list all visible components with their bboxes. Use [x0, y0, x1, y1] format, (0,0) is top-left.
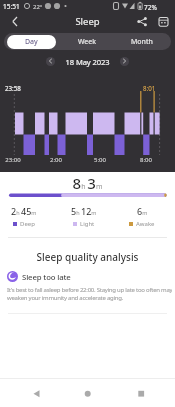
button[interactable]: Day: [7, 35, 56, 49]
staticText: 8:00: [138, 156, 154, 164]
staticText: 5h 12m: [71, 205, 97, 217]
staticText: 18 May 2023: [0, 57, 175, 67]
button[interactable]: [7, 271, 18, 282]
staticText: Sleep quality analysis: [0, 250, 175, 264]
button[interactable]: [4, 268, 171, 284]
staticText: Light: [80, 220, 95, 228]
button[interactable]: [120, 57, 129, 66]
staticText: 5:00: [92, 156, 108, 164]
staticText: 22°: [33, 3, 43, 11]
staticText: Awake: [136, 220, 155, 228]
staticText: Month: [131, 37, 153, 47]
staticText: 23:00: [2, 156, 24, 164]
staticText: Week: [78, 37, 97, 47]
staticText: 6m: [137, 205, 148, 217]
button[interactable]: Month: [114, 33, 169, 50]
button[interactable]: [118, 380, 163, 407]
staticText: Sleep too late: [22, 272, 71, 283]
staticText: 2:00: [48, 156, 64, 164]
button[interactable]: Week: [60, 33, 115, 50]
staticText: Sleep: [0, 15, 175, 28]
staticText: 15:51: [3, 2, 20, 11]
staticText: 2h 45m: [11, 205, 37, 217]
staticText: It's best to fall asleep before 22:00. S…: [7, 286, 172, 294]
button[interactable]: [6, 13, 22, 30]
staticText: weaken your immunity and accelerate agin…: [7, 294, 172, 302]
staticText: 72%: [144, 3, 157, 12]
button[interactable]: [46, 57, 55, 66]
staticText: Deep: [20, 220, 35, 228]
staticText: 8h 3m: [0, 173, 175, 193]
staticText: Day: [25, 37, 38, 47]
button[interactable]: [20, 380, 65, 407]
button[interactable]: [155, 13, 172, 30]
button[interactable]: [65, 380, 110, 407]
staticText: 23:58: [5, 84, 21, 92]
staticText: 8:01: [143, 84, 156, 92]
button[interactable]: [134, 13, 150, 30]
